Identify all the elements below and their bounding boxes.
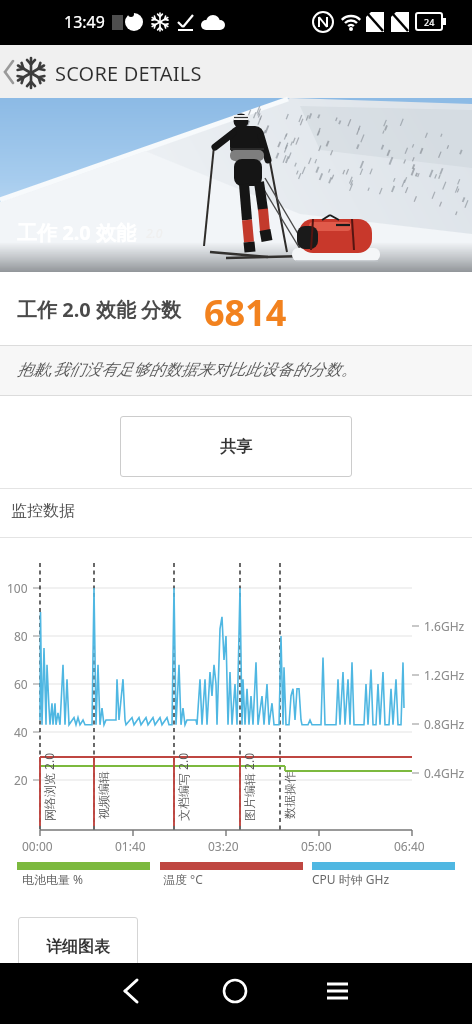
staticText: 视频编辑 (96, 771, 111, 819)
button[interactable]: 共享 (120, 416, 352, 477)
staticText: 60 (14, 676, 28, 692)
staticText: 05:00 (301, 838, 332, 854)
staticText: 电池电量 % (22, 871, 84, 887)
staticText: 抱歉,我们没有足够的数据来对比此设备的分数。 (17, 358, 358, 380)
staticText: 网络浏览 2.0 (41, 752, 57, 821)
staticText: 工作 2.0 效能 (17, 219, 136, 246)
staticText: 监控数据 (11, 501, 75, 521)
staticText: 6814 (204, 288, 287, 337)
staticText: 0.8GHz (424, 716, 465, 732)
staticText: 00:00 (22, 838, 53, 854)
staticText: 详细图表 (46, 937, 110, 957)
staticText: 01:40 (115, 838, 146, 854)
staticText: 1.2GHz (424, 667, 465, 683)
staticText: 1.6GHz (424, 618, 465, 634)
staticText: 文档编写 2.0 (175, 752, 191, 821)
button[interactable] (186, 963, 286, 1024)
staticText: 数据操作 (282, 771, 297, 819)
staticText: 03:20 (208, 838, 239, 854)
button[interactable]: SCORE DETAILS (0, 45, 472, 98)
staticText: SCORE DETAILS (55, 60, 202, 87)
staticText: 80 (14, 628, 28, 644)
staticText: 40 (14, 724, 28, 740)
button[interactable]: 详细图表 (18, 917, 138, 977)
staticText: 13:49 (64, 11, 105, 33)
staticText: 20 (14, 772, 28, 788)
staticText: 温度 °C (163, 871, 203, 887)
button[interactable] (292, 963, 392, 1024)
staticText: 图片编辑 2.0 (241, 752, 257, 821)
staticText: 06:40 (394, 838, 425, 854)
staticText: 工作 2.0 效能 分数 (17, 296, 182, 323)
button[interactable] (80, 963, 180, 1024)
staticText: 0.4GHz (424, 765, 465, 781)
staticText: 100 (7, 580, 28, 596)
staticText: 24 (424, 16, 435, 28)
staticText: CPU 时钟 GHz (312, 871, 390, 887)
staticText: 2.0 (146, 225, 163, 241)
staticText: 共享 (220, 437, 252, 457)
